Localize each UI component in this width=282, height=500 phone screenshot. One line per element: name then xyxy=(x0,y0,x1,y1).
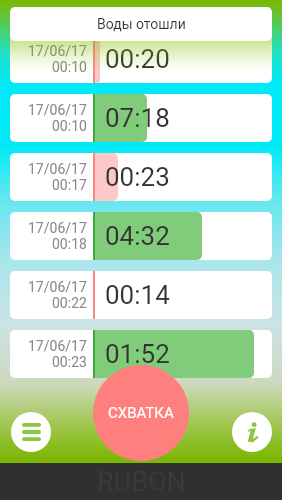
button[interactable]: Menu xyxy=(11,412,51,452)
staticText: 01:52 xyxy=(105,339,170,369)
staticText: 17/06/17 xyxy=(28,43,87,59)
staticText: 00:22 xyxy=(52,295,87,311)
button[interactable]: 17/06/17 xyxy=(10,35,272,83)
button[interactable]: 17/06/17 xyxy=(10,271,272,319)
staticText: 17/06/17 xyxy=(28,279,87,295)
staticText: 17/06/17 xyxy=(28,220,87,236)
button[interactable]: СХВАТКА xyxy=(93,365,189,461)
staticText: СХВАТКА xyxy=(108,404,174,422)
button[interactable]: 17/06/17 xyxy=(10,212,272,260)
button[interactable]: 17/06/17 xyxy=(10,94,272,142)
staticText: 00:18 xyxy=(52,236,87,252)
staticText: 00:20 xyxy=(105,44,170,74)
button[interactable]: Info xyxy=(232,412,272,452)
staticText: 17/06/17 xyxy=(28,102,87,118)
staticText: Воды отошли xyxy=(97,16,186,32)
staticText: 00:23 xyxy=(52,354,87,370)
staticText: 00:10 xyxy=(52,59,87,75)
staticText: 07:18 xyxy=(105,103,170,133)
staticText: 00:10 xyxy=(52,118,87,134)
button[interactable]: 17/06/17 xyxy=(10,153,272,201)
staticText: 04:32 xyxy=(105,221,170,251)
staticText: 00:14 xyxy=(105,280,170,310)
staticText: 00:17 xyxy=(52,177,87,193)
button[interactable]: Воды отошли xyxy=(10,7,272,41)
button[interactable]: 17/06/17 xyxy=(10,330,272,378)
staticText: 17/06/17 xyxy=(28,161,87,177)
staticText: 17/06/17 xyxy=(28,338,87,354)
staticText: 00:23 xyxy=(105,162,170,192)
staticText: RUBON xyxy=(97,466,186,498)
